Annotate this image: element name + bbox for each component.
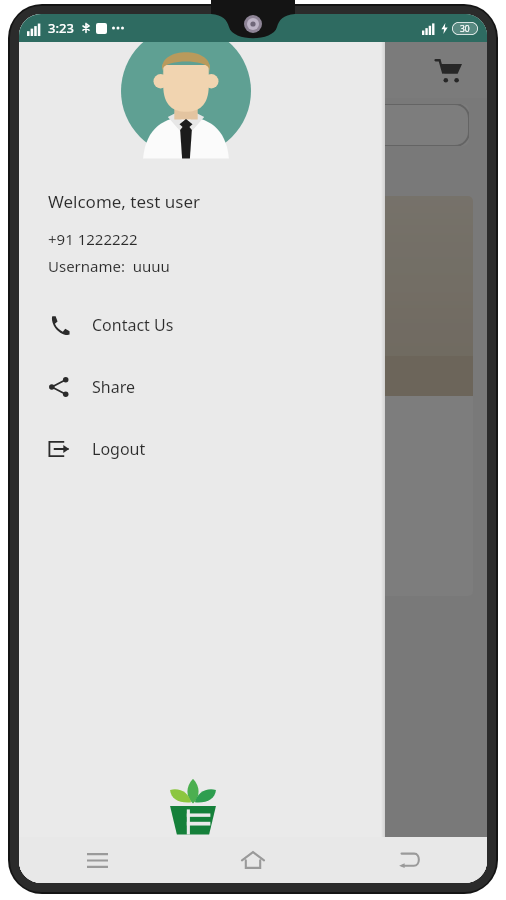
button[interactable]: Logout — [19, 432, 385, 466]
staticText: 30 — [460, 23, 470, 35]
staticText: 3:23 — [48, 19, 74, 37]
button[interactable]: Home — [175, 837, 331, 883]
staticText: Logout — [92, 438, 146, 460]
staticText: Welcome, test user — [48, 190, 201, 213]
button[interactable]: Back — [331, 837, 487, 883]
button[interactable]: Search — [37, 104, 469, 146]
button[interactable]: Contact Us — [19, 308, 385, 342]
button[interactable]: Recents — [19, 837, 175, 883]
staticText: +91 1222222 — [48, 229, 138, 249]
button[interactable]: Recents — [19, 837, 175, 883]
staticText: Share — [92, 376, 135, 398]
button[interactable]: TEST H6E — [33, 196, 473, 596]
button[interactable]: Cart — [431, 53, 465, 87]
staticText: MODEL H6 5IN — [47, 441, 139, 459]
staticText: Username: uuuu — [48, 256, 170, 276]
staticText: 3:23 — [48, 19, 74, 37]
staticText: Contact Us — [92, 314, 174, 336]
staticText: 30 — [460, 23, 470, 35]
button[interactable]: Back — [331, 837, 487, 883]
button[interactable]: Share — [19, 370, 385, 404]
button[interactable]: Home — [175, 837, 331, 883]
